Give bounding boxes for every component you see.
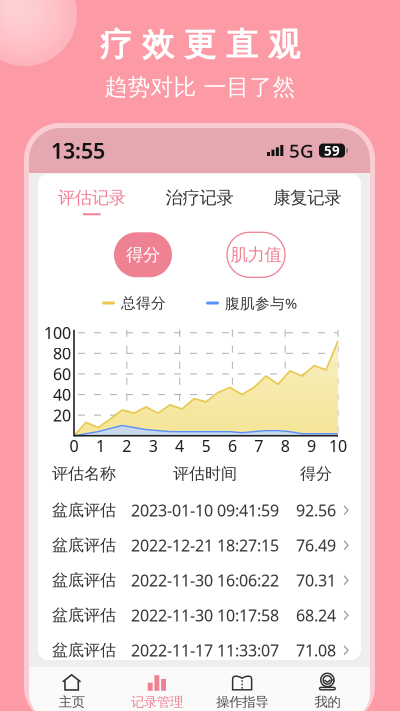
staticText: 2023-01-10 09:41:59 [131,500,279,521]
button[interactable]: 操作指导 [199,667,285,711]
button[interactable]: 盆底评估 [38,633,361,668]
staticText: 盆底评估 [52,640,116,660]
button[interactable]: 评估记录 [38,187,146,215]
staticText: 40 [53,384,71,405]
staticText: 4 [175,435,184,456]
staticText: 7 [254,435,263,456]
staticText: 68.24 [296,605,336,626]
staticText: 76.49 [296,535,336,556]
staticText: 得分 [126,244,160,265]
button[interactable]: 肌力值 [227,232,285,277]
staticText: 2 [122,435,131,456]
button[interactable]: 记录管理 [114,667,199,711]
staticText: 评估记录 [58,187,126,208]
staticText: 总得分 [121,294,166,312]
staticText: 70.31 [296,570,336,591]
staticText: 3 [149,435,158,456]
staticText: 100 [44,322,71,343]
staticText: 评估时间 [173,464,237,484]
staticText: 8 [281,435,290,456]
staticText: 10 [329,435,347,456]
staticText: 得分 [300,464,332,484]
staticText: 趋势对比 一目了然 [104,73,295,101]
staticText: 5G [289,138,314,163]
button[interactable]: 盆底评估 [38,563,361,598]
staticText: 20 [53,404,71,426]
staticText: 治疗记录 [165,187,233,208]
staticText: 记录管理 [131,694,183,710]
staticText: 6 [228,435,237,456]
button[interactable]: 治疗记录 [146,187,253,215]
staticText: 13:55 [51,136,105,165]
staticText: 0 [69,435,78,456]
staticText: 康复记录 [273,187,341,208]
staticText: 2022-11-17 11:33:07 [131,640,279,661]
staticText: 操作指导 [216,694,268,710]
button[interactable]: 得分 [114,232,172,277]
staticText: 71.08 [296,640,336,661]
staticText: 腹肌参与% [225,293,297,313]
staticText: 80 [53,343,71,364]
staticText: 盆底评估 [52,500,116,520]
button[interactable]: 盆底评估 [38,598,361,633]
staticText: 1 [96,435,105,456]
staticText: 92.56 [296,500,336,521]
staticText: 盆底评估 [52,535,116,555]
staticText: 肌力值 [230,244,281,265]
button[interactable]: 主页 [29,667,114,711]
button[interactable]: 我的 [285,667,370,711]
staticText: 主页 [59,694,85,710]
button[interactable]: 盆底评估 [38,528,361,563]
staticText: 2022-11-30 10:17:58 [131,605,279,626]
staticText: 9 [307,435,316,456]
staticText: 5 [201,435,210,456]
button[interactable]: 康复记录 [253,187,361,215]
staticText: 盆底评估 [52,570,116,590]
staticText: 2022-12-21 18:27:15 [131,535,279,556]
staticText: 评估名称 [52,464,116,484]
staticText: 60 [53,363,71,384]
staticText: 2022-11-30 16:06:22 [131,570,279,591]
button[interactable]: 盆底评估 [38,493,361,528]
staticText: 我的 [314,694,340,710]
staticText: 盆底评估 [52,605,116,625]
staticText: 疗 效 更 直 观 [100,25,300,64]
staticText: 59 [324,142,340,159]
